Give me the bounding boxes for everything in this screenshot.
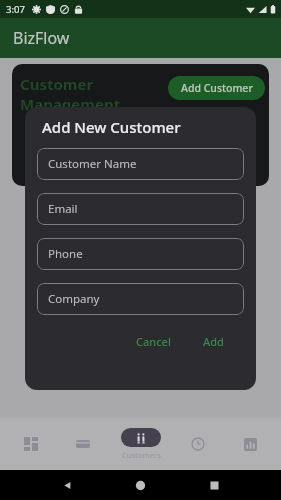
staticText: Customers [122,450,161,460]
staticText: Add New Customer [42,117,181,137]
other: Recents [208,479,221,492]
button[interactable]: Add [197,331,230,352]
button[interactable]: Add Customer [168,76,265,100]
staticText: Management [20,94,121,114]
button[interactable]: History [177,422,219,466]
staticText: Customer Name [48,156,137,172]
staticText: BizFlow [13,27,70,49]
other: Home [134,479,147,492]
button[interactable]: Phone [37,238,244,270]
staticText: Cancel [136,334,171,349]
button[interactable]: Customer Name [37,148,244,180]
button[interactable]: Customers [115,428,167,460]
button[interactable]: Company [37,283,244,315]
staticText: Company [48,291,100,307]
button[interactable]: Reports [229,422,271,466]
staticText: Add Customer [181,81,253,95]
staticText: 3:07 [6,3,25,16]
staticText: Add [203,334,224,349]
other: Back [61,479,74,492]
button[interactable]: Payments [62,422,104,466]
button[interactable]: Cancel [130,331,177,352]
staticText: Email [48,201,78,217]
button[interactable]: Dashboard [10,422,52,466]
button[interactable]: Email [37,193,244,225]
staticText: Phone [48,246,83,262]
staticText: Customer [20,74,94,94]
